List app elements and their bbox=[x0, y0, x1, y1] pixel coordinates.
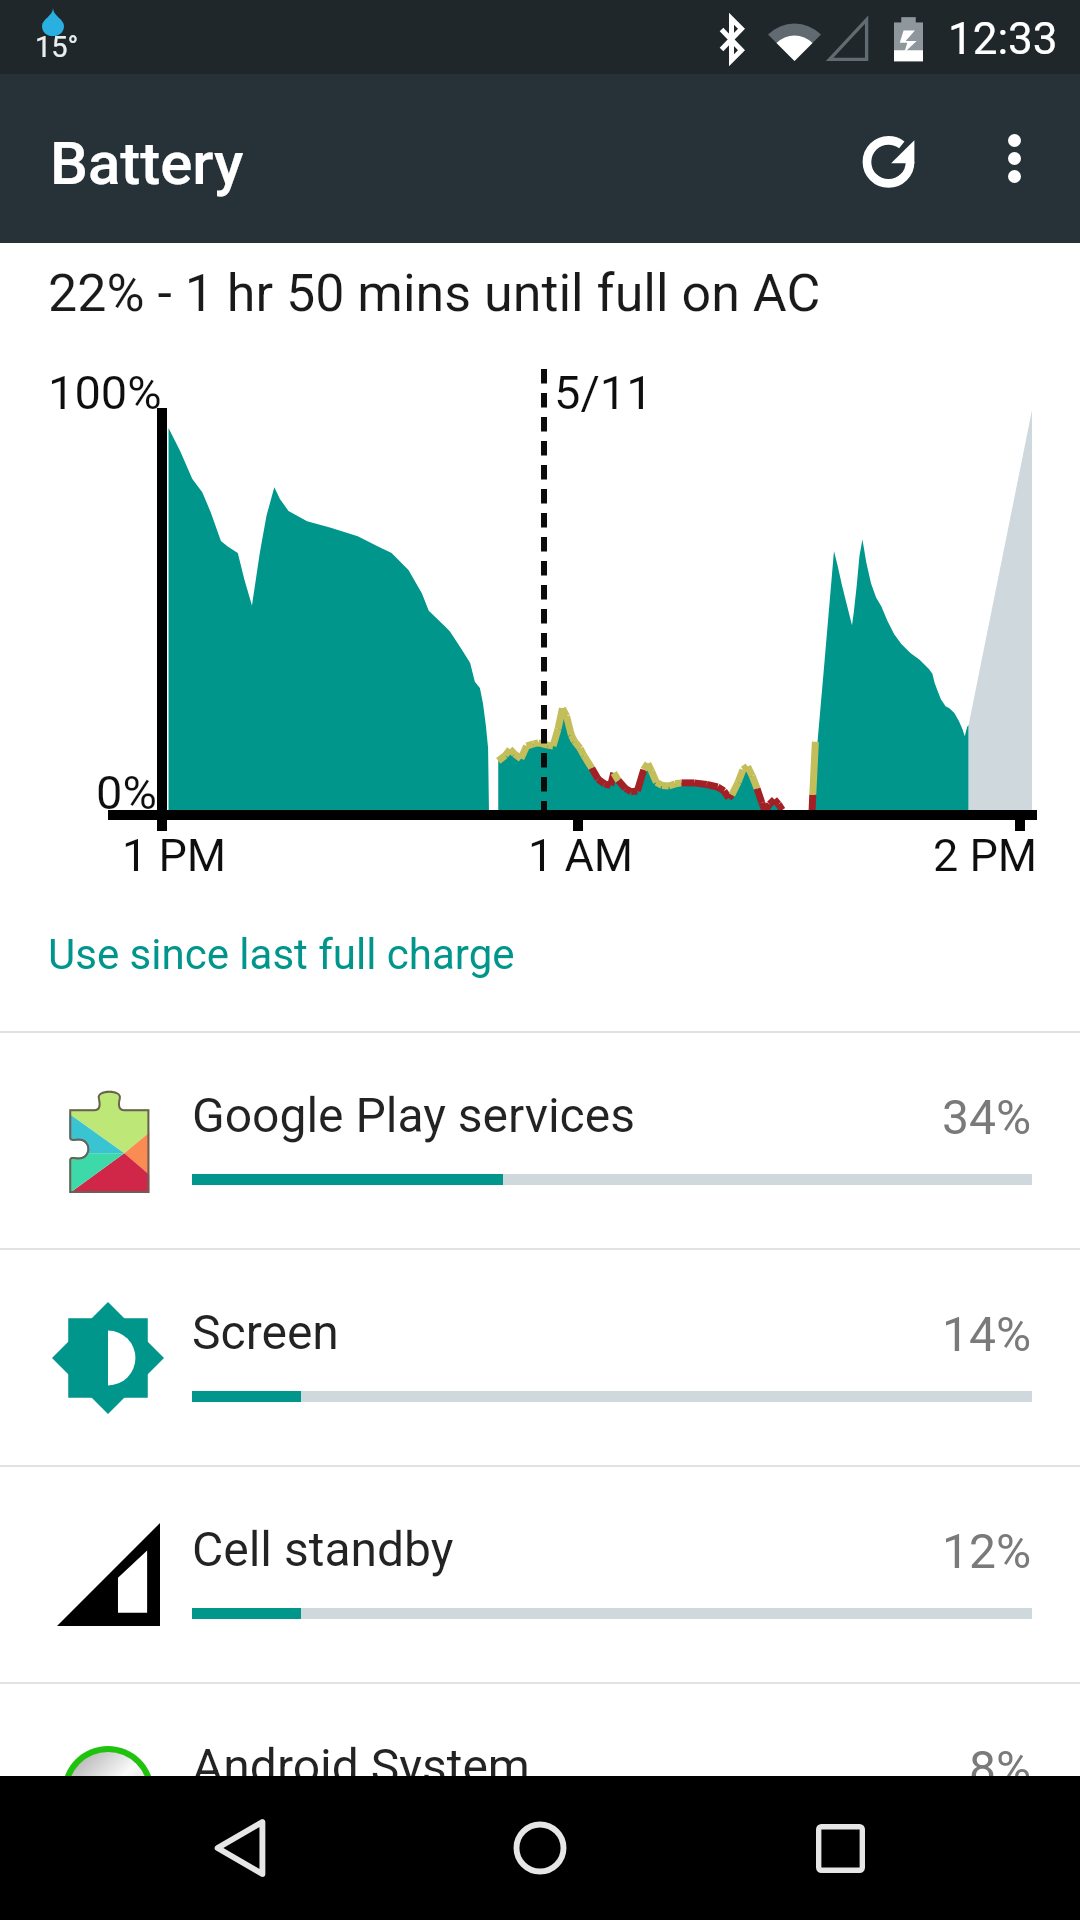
staticText: Cell standby bbox=[192, 1521, 454, 1577]
staticText: Google Play services bbox=[192, 1087, 635, 1143]
button[interactable]: Refresh bbox=[833, 74, 953, 243]
button[interactable]: Screen bbox=[0, 1250, 1080, 1465]
button[interactable]: Use since last full charge bbox=[0, 914, 1080, 991]
staticText: Android System bbox=[192, 1738, 530, 1794]
button[interactable]: Home bbox=[450, 1776, 630, 1920]
staticText: 12% bbox=[942, 1523, 1032, 1579]
button[interactable]: Back bbox=[150, 1776, 330, 1920]
button[interactable]: Recent apps bbox=[750, 1776, 930, 1920]
button[interactable]: More options bbox=[954, 74, 1074, 243]
staticText: 1 PM bbox=[122, 829, 227, 882]
staticText: 34% bbox=[942, 1089, 1032, 1145]
button[interactable]: Android System bbox=[0, 1684, 1080, 1899]
staticText: 5/11 bbox=[554, 365, 653, 420]
staticText: 15° bbox=[35, 30, 79, 64]
staticText: Screen bbox=[192, 1304, 339, 1360]
staticText: 14% bbox=[942, 1306, 1032, 1362]
staticText: 1 AM bbox=[528, 829, 634, 882]
button[interactable]: Google Play services bbox=[0, 1033, 1080, 1248]
staticText: Use since last full charge bbox=[48, 930, 515, 979]
button[interactable]: Cell standby bbox=[0, 1467, 1080, 1682]
staticText: 8% bbox=[969, 1740, 1032, 1796]
staticText: 100% bbox=[48, 365, 162, 420]
staticText: Battery bbox=[50, 128, 244, 198]
staticText: 22% - 1 hr 50 mins until full on AC bbox=[48, 263, 821, 324]
staticText: 2 PM bbox=[933, 829, 1038, 882]
staticText: 12:33 bbox=[948, 13, 1058, 65]
staticText: 0% bbox=[96, 765, 157, 820]
